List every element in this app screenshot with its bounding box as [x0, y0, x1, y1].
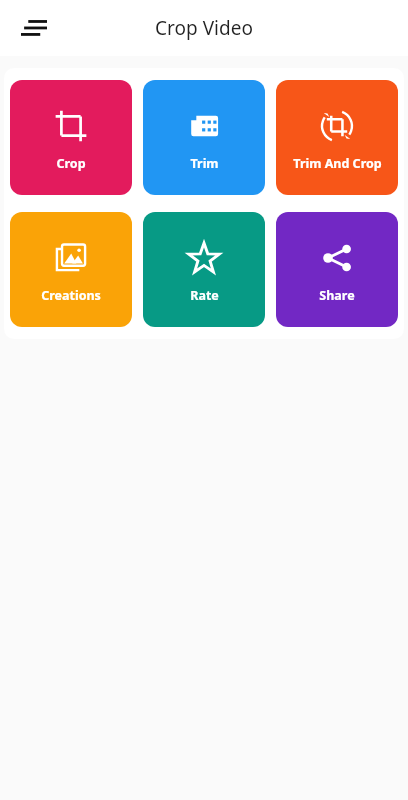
staticText: Creations	[41, 287, 101, 304]
button[interactable]: Trim And Crop	[276, 80, 398, 195]
staticText: Trim	[190, 155, 219, 172]
staticText: Crop Video	[155, 15, 253, 41]
staticText: Trim And Crop	[293, 155, 382, 172]
button[interactable]: Trim	[143, 80, 265, 195]
button[interactable]: Share	[276, 212, 398, 327]
button[interactable]: Crop	[10, 80, 132, 195]
button[interactable]: Open navigation menu	[10, 4, 58, 52]
button[interactable]: Creations	[10, 212, 132, 327]
staticText: Share	[319, 287, 355, 304]
staticText: Crop	[56, 155, 86, 172]
staticText: Rate	[190, 287, 219, 304]
button[interactable]: Rate	[143, 212, 265, 327]
